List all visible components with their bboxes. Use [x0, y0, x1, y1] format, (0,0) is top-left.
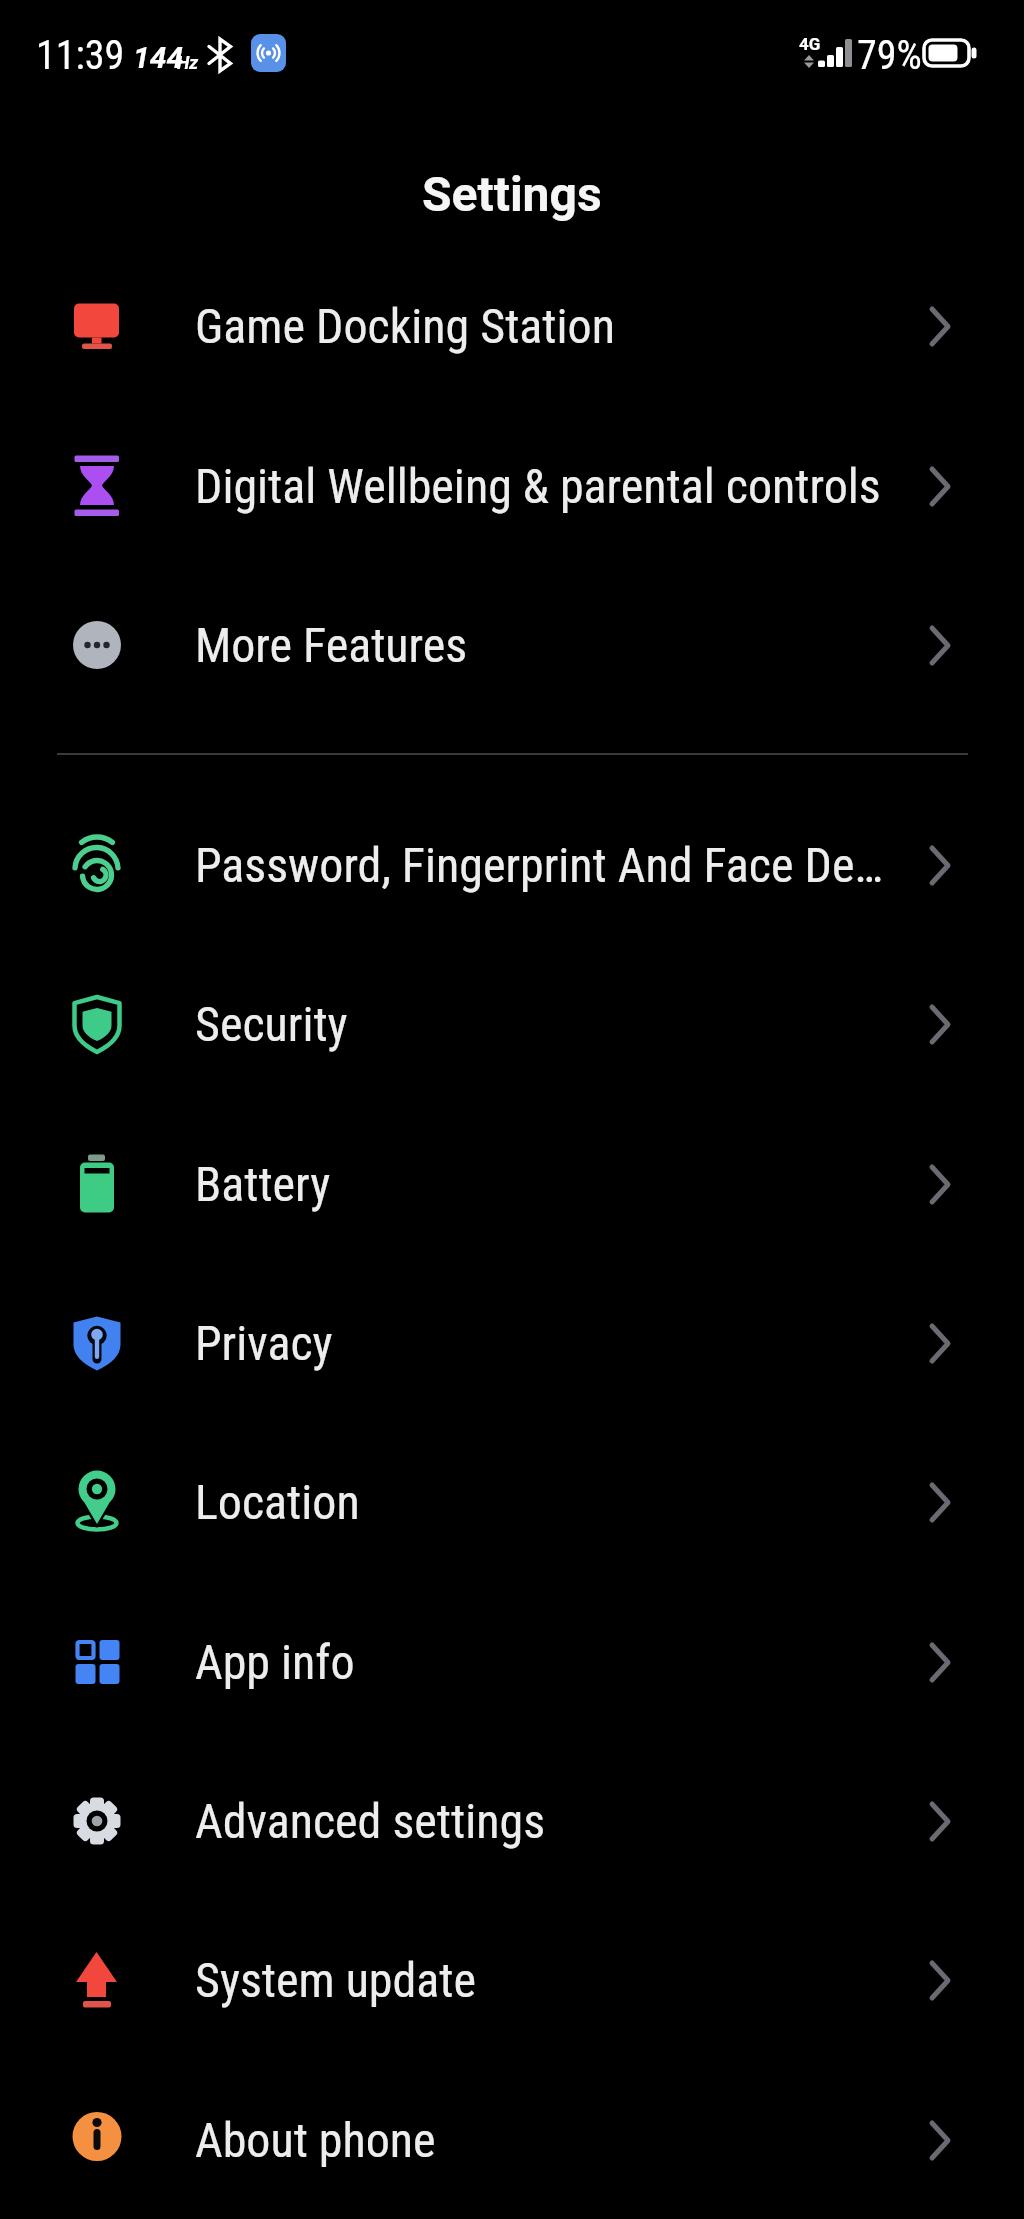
staticText: Security	[195, 996, 348, 1052]
button[interactable]: Game Docking Station	[0, 246, 1024, 406]
staticText: Privacy	[195, 1315, 333, 1371]
button[interactable]: Battery	[0, 1104, 1024, 1264]
staticText: Hz	[177, 52, 199, 73]
staticText: Password, Fingerprint And Face De…	[195, 837, 883, 893]
button[interactable]: System update	[0, 1900, 1024, 2060]
staticText: 11:39	[36, 32, 125, 79]
button[interactable]: Location	[0, 1422, 1024, 1582]
button[interactable]: More Features	[0, 565, 1024, 725]
staticText: Game Docking Station	[195, 298, 615, 354]
staticText: Settings	[422, 166, 602, 222]
button[interactable]: Digital Wellbeing & parental controls	[0, 406, 1024, 566]
staticText: 79%	[857, 32, 922, 79]
staticText: App info	[195, 1634, 355, 1690]
staticText: Battery	[195, 1156, 331, 1212]
button[interactable]: Advanced settings	[0, 1741, 1024, 1901]
button[interactable]: About phone	[0, 2060, 1024, 2219]
staticText: Advanced settings	[195, 1793, 546, 1849]
button[interactable]: Security	[0, 944, 1024, 1104]
staticText: 144	[133, 40, 184, 75]
button[interactable]: App info	[0, 1582, 1024, 1742]
staticText: Digital Wellbeing & parental controls	[195, 458, 881, 514]
button[interactable]: Password, Fingerprint And Face De…	[0, 785, 1024, 945]
staticText: More Features	[195, 617, 468, 673]
staticText: System update	[195, 1952, 477, 2008]
staticText: Location	[195, 1474, 360, 1530]
staticText: About phone	[195, 2112, 436, 2168]
button[interactable]: Privacy	[0, 1263, 1024, 1423]
staticText: 4G	[799, 34, 821, 54]
